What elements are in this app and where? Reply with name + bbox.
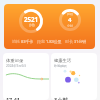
staticText: 2521 xyxy=(24,15,39,23)
staticText: 小时 xyxy=(67,24,73,28)
staticText: 睡眠 xyxy=(67,12,73,16)
button[interactable]: 2521 xyxy=(4,4,95,49)
staticText: 4 xyxy=(68,16,72,24)
staticText: 31分钟 xyxy=(74,39,87,44)
staticText: 消耗 xyxy=(12,39,20,44)
staticText: 健康生活 xyxy=(54,58,72,63)
staticText: 距离 xyxy=(37,39,45,44)
button[interactable]: 体重记录 xyxy=(3,53,49,100)
staticText: 体重记录 xyxy=(6,58,24,63)
staticText: 步数 xyxy=(29,23,35,27)
staticText: 昨晚睡眠 xyxy=(54,64,67,68)
staticText: 83千卡 xyxy=(21,39,34,44)
staticText: 2024年9月6日 xyxy=(6,64,27,68)
staticText: 3小时 xyxy=(54,96,68,100)
staticText: 时长 xyxy=(65,39,73,44)
button[interactable]: 健康生活 xyxy=(51,53,97,100)
staticText: 17.41 xyxy=(6,96,20,100)
staticText: 1.83公里 xyxy=(46,39,62,44)
